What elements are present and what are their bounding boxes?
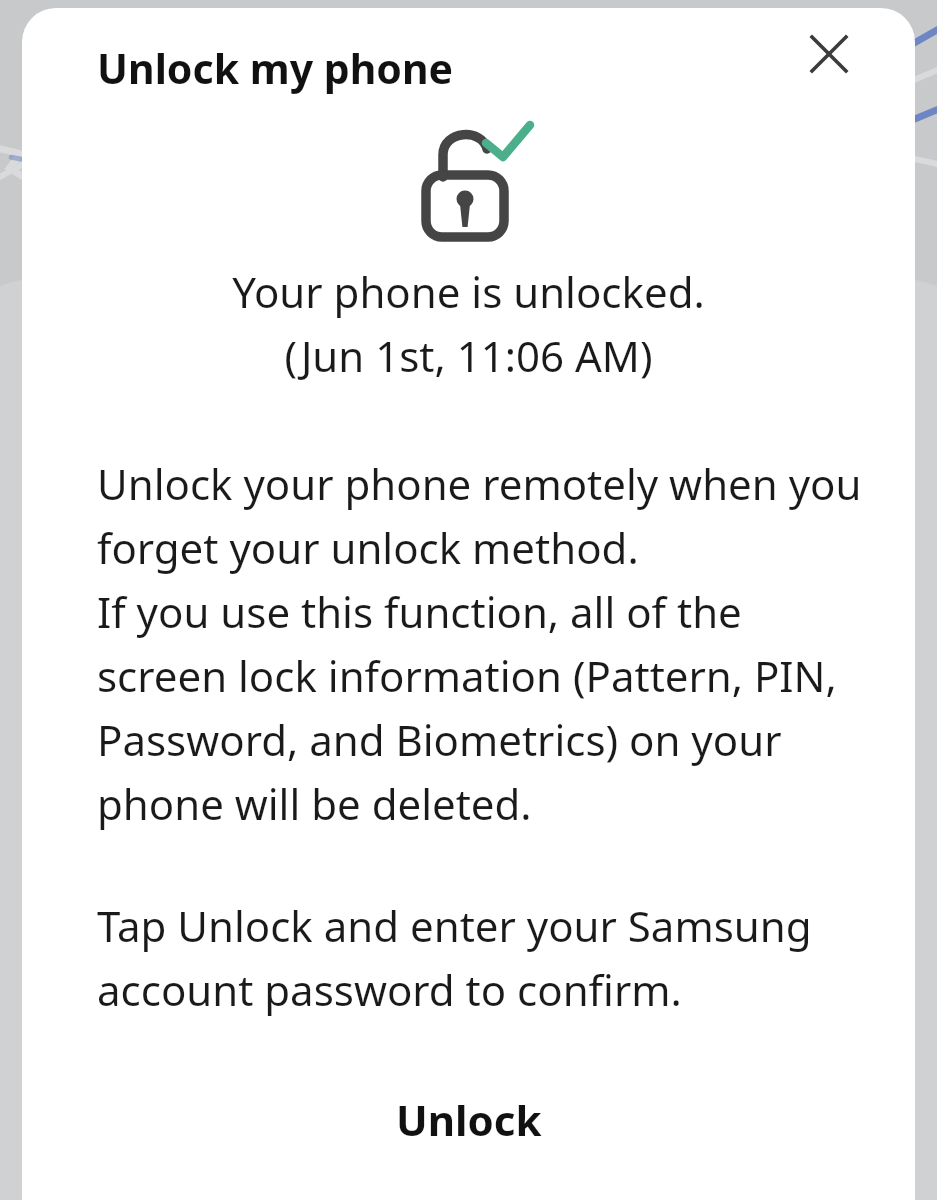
staticText: Unlock your phone remotely when you forg… [97, 455, 873, 833]
staticText: Tap Unlock and enter your Samsung accoun… [97, 897, 873, 1019]
button[interactable]: Unlock [22, 1077, 915, 1197]
button[interactable]: Close [798, 23, 860, 85]
staticText: Unlock my phone [97, 40, 454, 96]
staticText: Your phone is unlocked. (Jun 1st, 11:06 … [22, 263, 915, 385]
staticText: Unlock [396, 1091, 542, 1148]
